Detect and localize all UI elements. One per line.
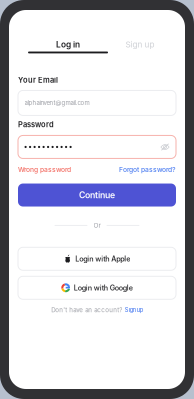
staticText: Sign up <box>125 40 154 49</box>
staticText: Or <box>93 221 100 229</box>
button[interactable]: Forgot password? <box>119 165 176 174</box>
staticText: Login with Apple <box>75 254 130 263</box>
staticText: Continue <box>79 190 115 200</box>
staticText: Your Email <box>18 75 58 84</box>
button[interactable]: Sign up <box>125 307 143 313</box>
staticText: Password <box>18 120 54 129</box>
staticText: Don't have an account? <box>51 306 122 314</box>
staticText: Log in <box>56 39 80 49</box>
button[interactable]: Sign up <box>108 40 172 53</box>
button[interactable]: Log in <box>28 40 108 53</box>
staticText: Wrong password <box>18 165 71 174</box>
staticText: Forgot password? <box>119 165 176 174</box>
button[interactable]: Login with Google <box>18 276 176 299</box>
button[interactable]: Continue <box>18 183 176 206</box>
staticText: Sign up <box>125 307 143 313</box>
button[interactable]: Login with Apple <box>18 247 176 270</box>
staticText: alphainvent@gmail.com <box>24 99 89 107</box>
staticText: Login with Google <box>74 283 133 292</box>
